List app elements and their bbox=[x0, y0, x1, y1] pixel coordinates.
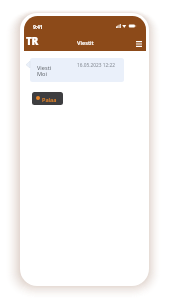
staticText: Viestit bbox=[77, 39, 94, 47]
staticText: Viesti bbox=[37, 64, 52, 72]
staticText: TR bbox=[26, 34, 39, 48]
button[interactable]: Viesti bbox=[30, 58, 124, 82]
button[interactable]: Menu bbox=[133, 38, 145, 50]
staticText: Moi bbox=[37, 70, 47, 78]
staticText: Palaa bbox=[42, 96, 57, 104]
button[interactable]: Palaa bbox=[32, 92, 63, 105]
staticText: 16.05.2023 12:22 bbox=[77, 62, 116, 69]
staticText: 9:41 bbox=[33, 23, 43, 30]
